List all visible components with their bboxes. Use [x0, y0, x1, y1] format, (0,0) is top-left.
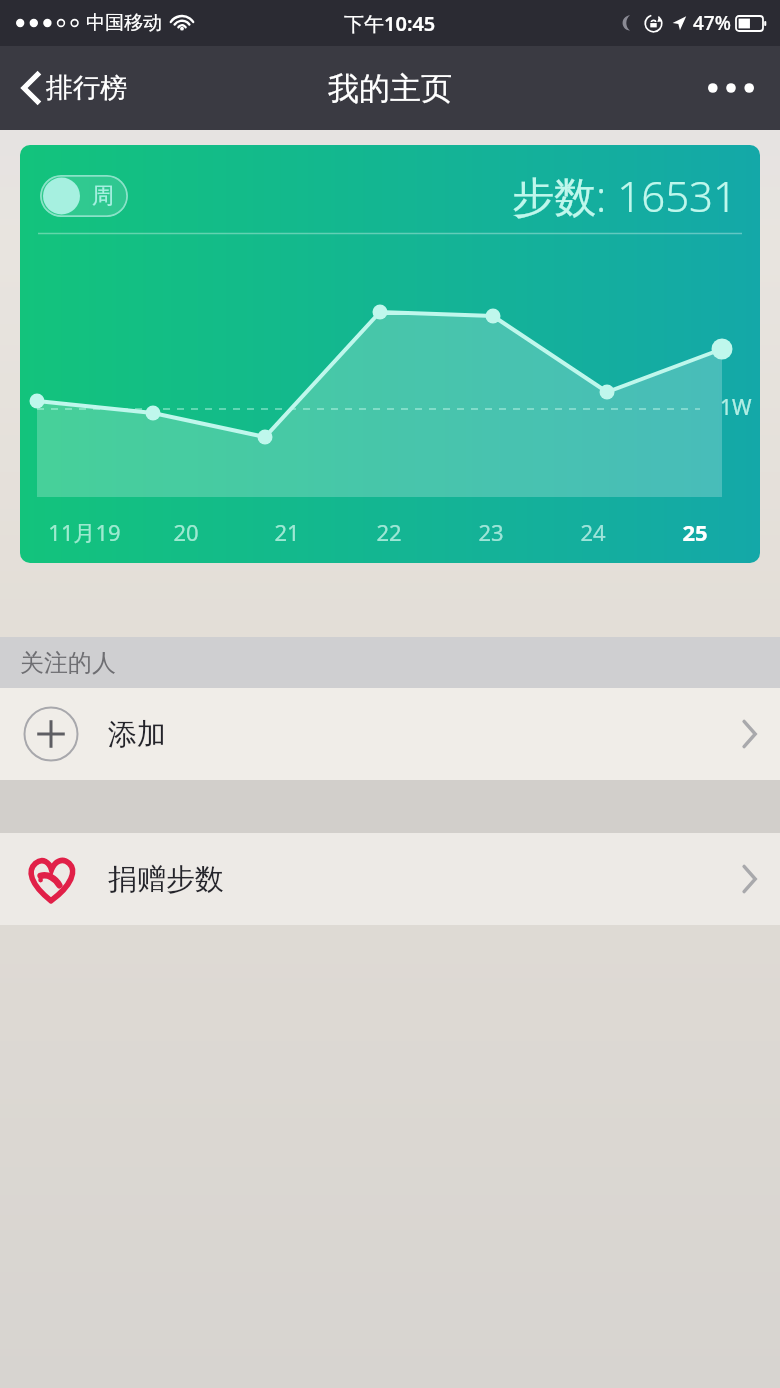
- staticText: 周: [92, 182, 114, 210]
- staticText: 排行榜: [46, 71, 127, 105]
- staticText: 捐赠步数: [108, 861, 224, 898]
- button[interactable]: 周: [40, 175, 128, 217]
- button[interactable]: More options: [696, 71, 766, 105]
- staticText: 47%: [693, 10, 731, 36]
- staticText: 关注的人: [20, 648, 116, 678]
- staticText: 21: [274, 517, 300, 547]
- staticText: 1W: [720, 393, 752, 422]
- staticText: 11月19: [48, 517, 121, 547]
- staticText: 中国移动: [86, 11, 162, 35]
- staticText: 23: [478, 517, 504, 547]
- staticText: 我的主页: [328, 69, 452, 108]
- staticText: 25: [682, 517, 708, 547]
- staticText: 下午10:45: [344, 10, 436, 37]
- staticText: 添加: [108, 716, 166, 753]
- staticText: 20: [173, 517, 199, 547]
- staticText: 22: [376, 517, 402, 547]
- staticText: 24: [580, 517, 606, 547]
- button[interactable]: 添加: [0, 688, 780, 780]
- button[interactable]: 周: [20, 145, 760, 563]
- staticText: 步数: 16531: [512, 167, 738, 224]
- button[interactable]: 捐赠步数: [0, 833, 780, 925]
- button[interactable]: 排行榜: [12, 63, 135, 113]
